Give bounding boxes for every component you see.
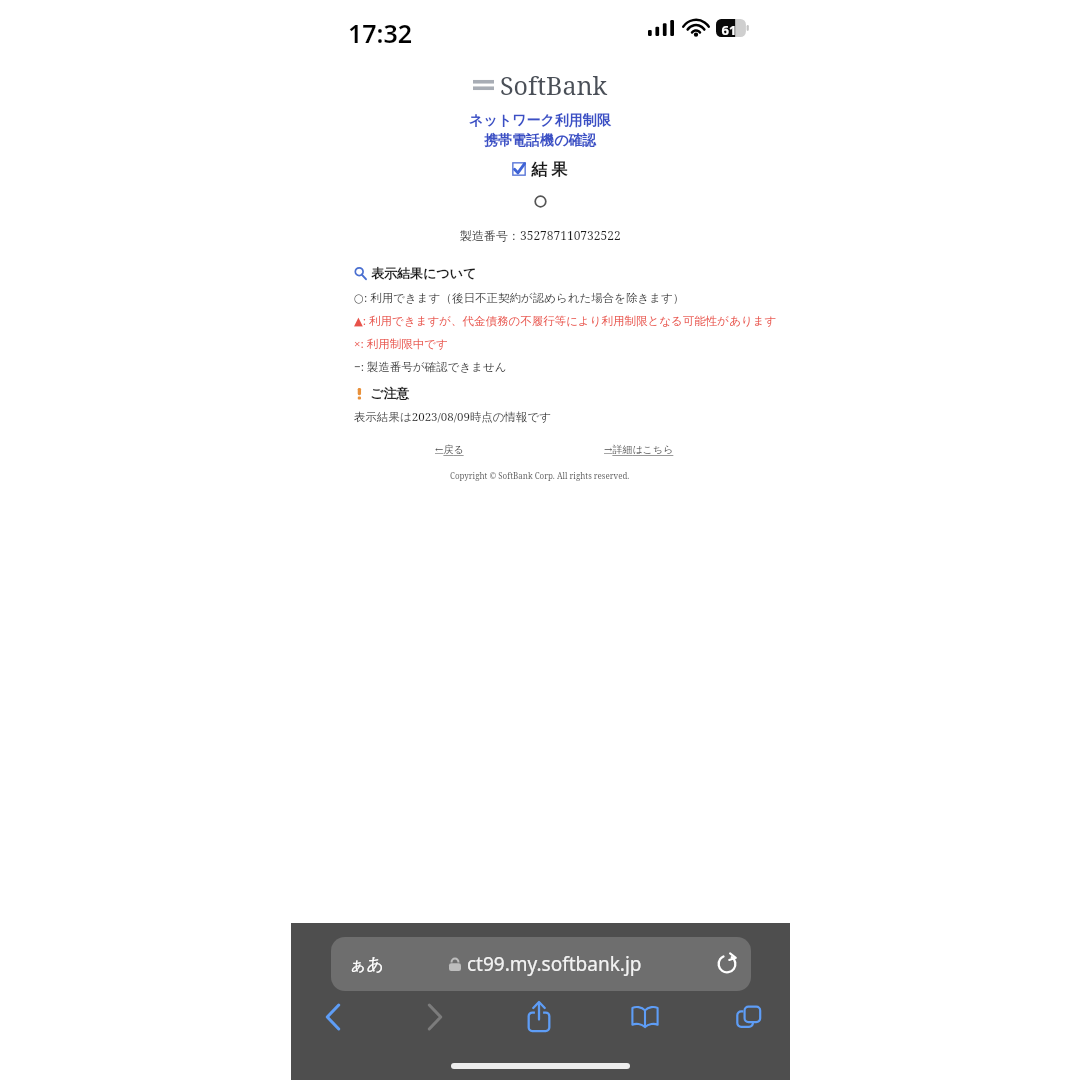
button[interactable]: Back (303, 993, 363, 1041)
staticText: 結 果 (531, 158, 568, 180)
button[interactable]: →詳細はこちら (602, 441, 676, 458)
staticText: 17:32 (348, 16, 413, 50)
staticText: ネットワーク利用制限 (469, 112, 611, 130)
staticText: ご注意 (370, 385, 410, 401)
staticText: 表示結果について (371, 265, 477, 281)
staticText: 表示結果は2023/08/09時点の情報です (354, 409, 552, 425)
staticText: SoftBank (500, 68, 608, 102)
staticText: 携帯電話機の確認 (484, 132, 597, 150)
staticText: 61 (718, 21, 740, 39)
staticText: ぁあ (349, 954, 384, 975)
button[interactable]: Forward (405, 993, 465, 1041)
button[interactable]: Bookmarks (615, 993, 675, 1041)
staticText: ○: 利用できます（後日不正契約が認められた場合を除きます） (354, 290, 685, 306)
button[interactable]: Tabs (719, 993, 779, 1041)
staticText: ←戻る (435, 443, 464, 456)
button[interactable]: Share (509, 991, 569, 1043)
button[interactable]: ←戻る (433, 441, 466, 458)
staticText: →詳細はこちら (604, 443, 674, 456)
staticText: −: 製造番号が確認できません (354, 359, 507, 375)
staticText: Copyright © SoftBank Corp. All rights re… (450, 470, 630, 481)
staticText: ct99.my.softbank.jp (467, 951, 642, 977)
staticText: ▲: 利用できますが、代金債務の不履行等により利用制限となる可能性があります (354, 313, 777, 329)
staticText: ×: 利用制限中です (354, 336, 448, 352)
button[interactable]: ぁあ (331, 937, 751, 991)
staticText: 製造番号：352787110732522 (460, 227, 621, 243)
button[interactable]: Reload (707, 944, 747, 984)
